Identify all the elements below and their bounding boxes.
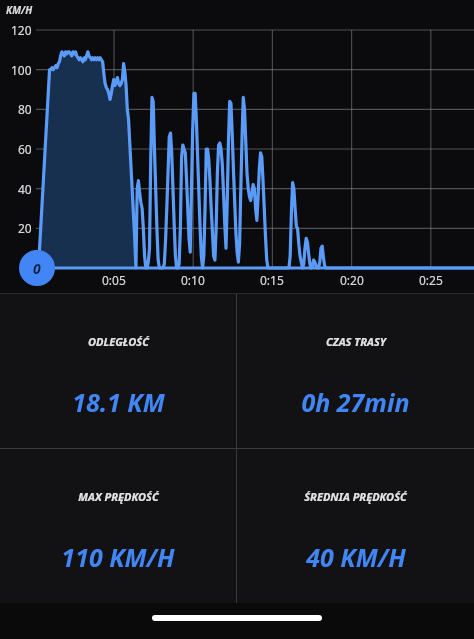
staticText: 110 KM/H — [61, 540, 175, 574]
staticText: KM/H — [6, 3, 33, 17]
staticText: 0:15 — [260, 272, 284, 288]
staticText: MAX PRĘDKOŚĆ — [78, 489, 159, 504]
staticText: 100 — [11, 62, 32, 78]
staticText: 40 KM/H — [306, 540, 406, 574]
staticText: 0:10 — [181, 272, 205, 288]
staticText: CZAS TRASY — [326, 334, 386, 349]
staticText: 20 — [18, 220, 32, 236]
staticText: ODLEGŁOŚĆ — [88, 334, 149, 349]
staticText: 120 — [11, 22, 32, 38]
button[interactable]: MAX PRĘDKOŚĆ — [0, 449, 236, 603]
button[interactable]: CZAS TRASY — [237, 294, 474, 448]
staticText: 60 — [18, 141, 32, 157]
staticText: ŚREDNIA PRĘDKOŚĆ — [304, 489, 407, 504]
staticText: 18.1 KM — [72, 385, 165, 419]
button[interactable]: ŚREDNIA PRĘDKOŚĆ — [237, 449, 474, 603]
staticText: 0:25 — [419, 272, 443, 288]
button[interactable]: Current speed 0 — [19, 250, 55, 286]
staticText: 0:20 — [340, 272, 364, 288]
staticText: 0 — [33, 259, 41, 278]
button[interactable]: ODLEGŁOŚĆ — [0, 294, 236, 448]
staticText: 0:05 — [102, 272, 126, 288]
staticText: 0h 27min — [301, 385, 410, 419]
staticText: 40 — [18, 181, 32, 197]
staticText: 80 — [18, 101, 32, 117]
